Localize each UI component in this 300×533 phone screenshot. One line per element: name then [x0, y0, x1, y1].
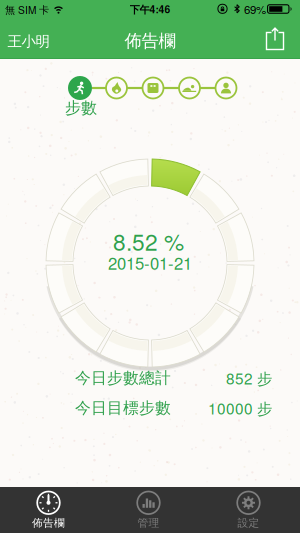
button[interactable]: 佈告欄: [0, 487, 96, 533]
staticText: 852 步: [226, 367, 272, 389]
button[interactable]: 步數: [66, 74, 94, 102]
button[interactable]: 設定: [200, 487, 296, 533]
staticText: 王小明: [7, 32, 49, 50]
staticText: 69%: [244, 1, 266, 17]
staticText: 10000 步: [208, 397, 272, 419]
button[interactable]: 睡眠: [175, 74, 203, 102]
staticText: 8.52 %: [113, 225, 184, 257]
button[interactable]: 王小明: [7, 21, 49, 61]
button[interactable]: 體重: [139, 74, 167, 102]
staticText: 設定: [237, 516, 259, 530]
button[interactable]: 管理: [100, 487, 196, 533]
staticText: 今日步數總計: [75, 368, 171, 388]
button[interactable]: 熱量: [102, 74, 130, 102]
staticText: 下午4:46: [129, 2, 170, 16]
button[interactable]: 分享: [259, 23, 291, 57]
staticText: 管理: [137, 516, 159, 530]
staticText: 佈告欄: [124, 30, 175, 52]
staticText: 今日目標步數: [75, 398, 171, 418]
staticText: 佈告欄: [32, 516, 65, 530]
staticText: 2015-01-21: [108, 251, 192, 274]
staticText: 步數: [65, 98, 97, 118]
button[interactable]: 個人: [212, 74, 240, 102]
staticText: 無 SIM 卡: [5, 2, 49, 17]
